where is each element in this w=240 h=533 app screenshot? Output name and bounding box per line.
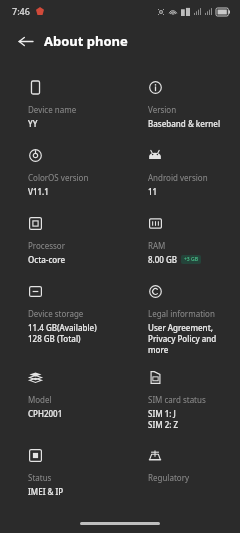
staticText: SIM card status [148, 394, 206, 405]
button[interactable]: Device storage [0, 276, 120, 362]
staticText: Android version [148, 172, 208, 183]
staticText: Version [148, 104, 177, 115]
staticText: IMEI & IP [28, 486, 64, 497]
staticText: User Agreement, Privacy Policy and more [148, 322, 217, 355]
staticText: Regulatory [148, 472, 190, 483]
button[interactable]: Status [0, 440, 120, 510]
staticText: YY [28, 118, 38, 129]
staticText: Octa-core [28, 254, 66, 265]
button[interactable]: SIM card status [120, 362, 240, 440]
staticText: Baseband & kernel [148, 118, 221, 129]
button[interactable]: Back [12, 28, 38, 54]
staticText: Device storage [28, 308, 84, 319]
button[interactable]: Regulatory [120, 440, 240, 510]
button[interactable]: Model [0, 362, 120, 440]
staticText: Legal information [148, 308, 215, 319]
staticText: Processor [28, 240, 65, 251]
staticText: Status [28, 472, 52, 483]
staticText: About phone [44, 32, 128, 50]
staticText: V11.1 [28, 186, 49, 197]
button[interactable]: Android version [120, 140, 240, 208]
button[interactable]: ColorOS version [0, 140, 120, 208]
button[interactable]: Processor [0, 208, 120, 276]
staticText: SIM 1: J SIM 2: Z [148, 408, 179, 430]
button[interactable]: Legal information [120, 276, 240, 362]
staticText: 11.4 GB(Available) 128 GB (Total) [28, 322, 97, 344]
staticText: Device name [28, 104, 77, 115]
staticText: 11 [148, 186, 158, 197]
button[interactable]: Version [120, 72, 240, 140]
staticText: RAM [148, 240, 166, 251]
staticText: CPH2001 [28, 408, 63, 419]
staticText: Model [28, 394, 52, 405]
button[interactable]: Device name [0, 72, 120, 140]
staticText: +3 GB [184, 256, 198, 263]
staticText: 7:46 [12, 5, 30, 17]
button[interactable]: RAM [120, 208, 240, 276]
staticText: ColorOS version [28, 172, 89, 183]
staticText: 8.00 GB [148, 254, 178, 265]
